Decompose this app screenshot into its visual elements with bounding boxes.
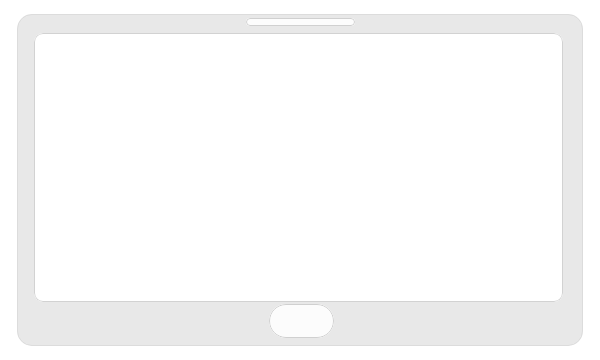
button[interactable]: Tablet display (34, 33, 563, 302)
button[interactable]: Home (269, 304, 334, 338)
